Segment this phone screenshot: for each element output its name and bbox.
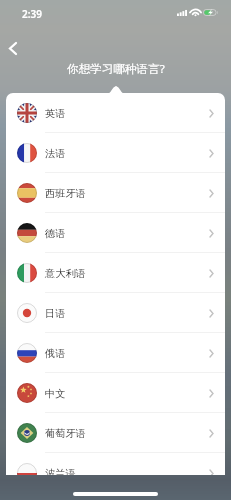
button[interactable]: 意大利语 [6,253,225,293]
staticText: 日语 [45,307,66,320]
staticText: 法语 [45,147,66,160]
button[interactable]: Back [1,36,25,60]
button[interactable]: 葡萄牙语 [6,413,225,453]
staticText: 你想学习哪种语言? [67,61,165,75]
staticText: 波兰语 [45,467,76,475]
button[interactable]: 波兰语 [6,453,225,475]
staticText: 俄语 [45,347,66,360]
button[interactable]: 英语 [6,93,225,133]
staticText: 意大利语 [45,267,86,280]
button[interactable]: 日语 [6,293,225,333]
staticText: 葡萄牙语 [45,427,86,440]
button[interactable]: 俄语 [6,333,225,373]
button[interactable]: 中文 [6,373,225,413]
staticText: 西班牙语 [45,187,86,200]
staticText: 中文 [45,387,66,400]
staticText: 英语 [45,107,66,120]
staticText: 2:39 [22,7,42,21]
button[interactable]: 西班牙语 [6,173,225,213]
button[interactable]: 法语 [6,133,225,173]
button[interactable]: 德语 [6,213,225,253]
staticText: 德语 [45,227,66,240]
